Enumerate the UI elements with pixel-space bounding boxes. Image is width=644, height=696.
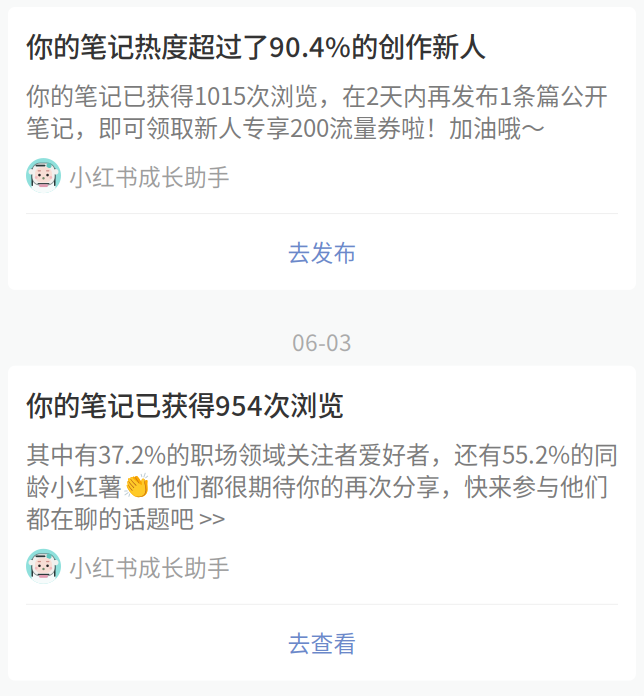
staticText: 龄小红薯👏他们都很期待你的再次分享，快来参与他们	[26, 468, 608, 503]
staticText: 你的笔记已获得1015次浏览，在2天内再发布1条篇公开	[26, 77, 608, 112]
button[interactable]: 去发布	[26, 214, 618, 290]
staticText: 笔记，即可领取新人专享200流量券啦！加油哦～	[26, 109, 545, 144]
staticText: 你的笔记热度超过了90.4%的创作新人	[26, 25, 486, 65]
button[interactable]: 去查看	[26, 605, 618, 681]
staticText: 去查看	[287, 626, 356, 659]
button[interactable]: 你的笔记热度超过了90.4%的创作新人	[26, 7, 618, 213]
staticText: 小红书成长助手	[69, 159, 230, 192]
staticText: 都在聊的话题吧 >>	[26, 500, 225, 535]
staticText: 去发布	[287, 235, 356, 268]
staticText: 小红书成长助手	[69, 550, 230, 583]
staticText: 你的笔记已获得954次浏览	[26, 384, 344, 424]
staticText: 其中有37.2%的职场领域关注者爱好者，还有55.2%的同	[26, 436, 618, 471]
button[interactable]: 你的笔记已获得954次浏览	[26, 366, 618, 604]
staticText: 06-03	[292, 325, 352, 358]
